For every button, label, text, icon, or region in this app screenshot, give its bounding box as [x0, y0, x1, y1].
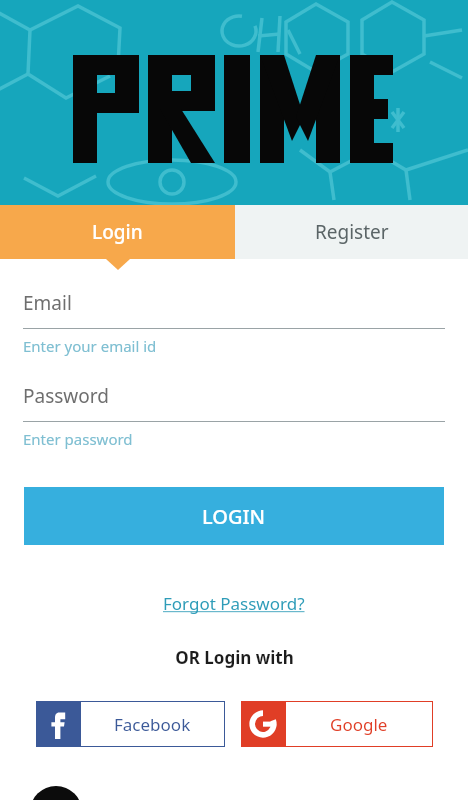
- button[interactable]: Register: [235, 205, 468, 259]
- staticText: LOGIN: [202, 503, 266, 530]
- button[interactable]: LOGIN: [24, 487, 444, 545]
- button[interactable]: Forgot Password?: [159, 588, 309, 619]
- button[interactable]: Login: [0, 205, 235, 259]
- staticText: Forgot Password?: [163, 592, 305, 615]
- staticText: OR Login with: [175, 646, 294, 669]
- staticText: Google: [330, 713, 388, 736]
- staticText: Enter your email id: [23, 336, 157, 356]
- staticText: Email: [23, 290, 72, 316]
- button[interactable]: Google: [241, 701, 433, 747]
- staticText: Login: [92, 219, 143, 245]
- button[interactable]: Facebook: [36, 701, 225, 747]
- staticText: Facebook: [114, 713, 191, 736]
- staticText: Password: [23, 383, 109, 409]
- staticText: Enter password: [23, 429, 133, 449]
- staticText: Register: [315, 219, 389, 245]
